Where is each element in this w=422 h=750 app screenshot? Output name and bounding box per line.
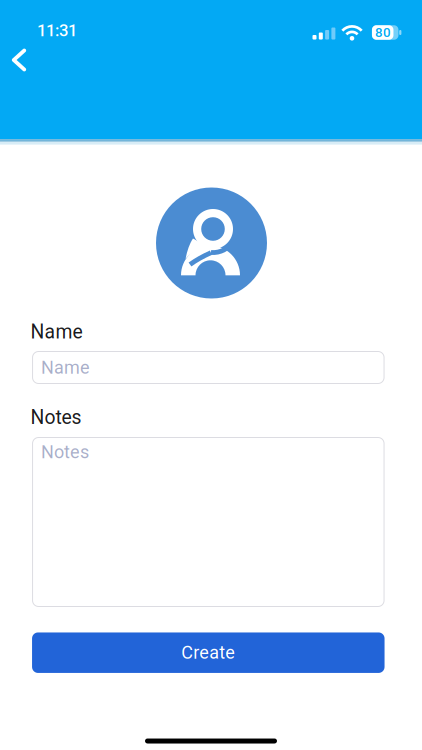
- staticText: 80: [375, 25, 391, 40]
- button[interactable]: Back: [2, 38, 36, 81]
- staticText: Notes: [30, 406, 81, 429]
- staticText: Name: [41, 357, 90, 378]
- staticText: 11:31: [37, 21, 77, 40]
- staticText: Notes: [41, 441, 89, 463]
- button[interactable]: Create: [32, 632, 385, 673]
- staticText: Create: [181, 642, 235, 663]
- staticText: Name: [30, 321, 82, 343]
